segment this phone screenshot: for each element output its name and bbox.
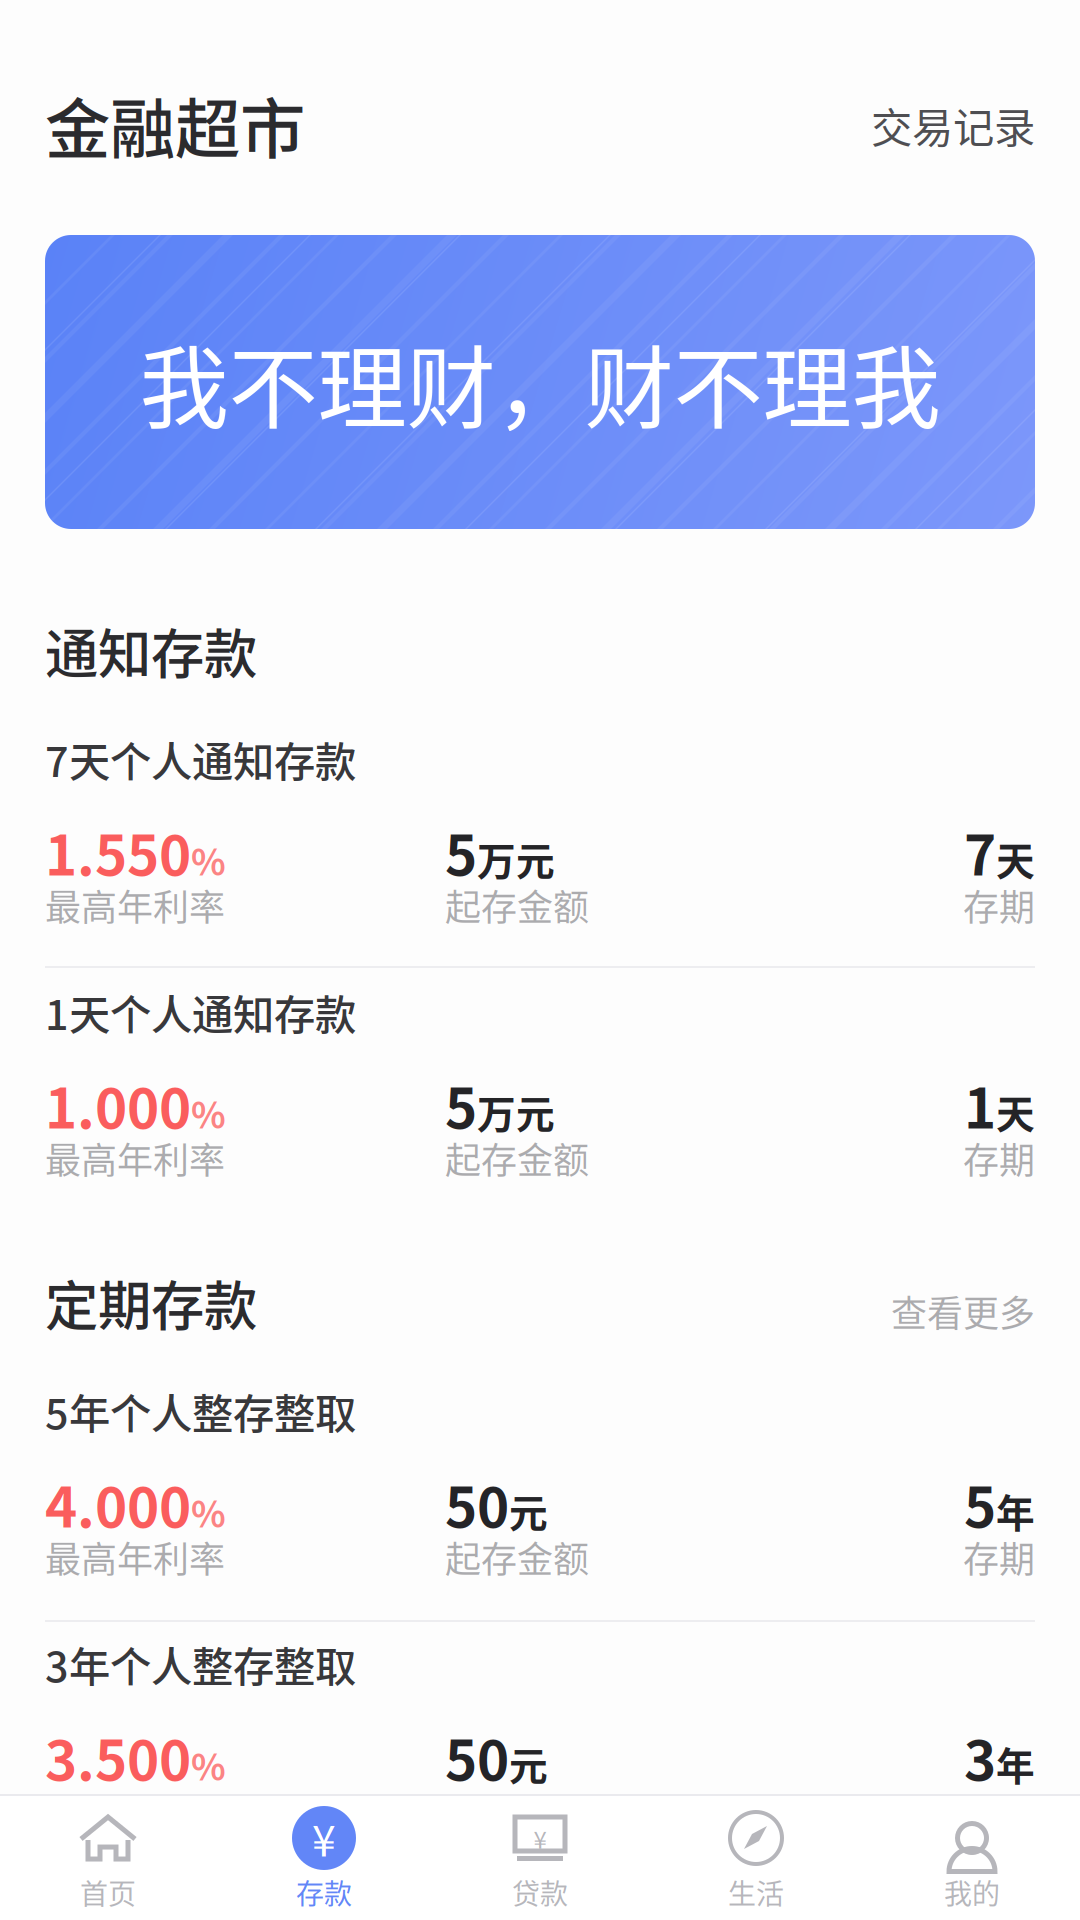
staticText: 1.550 (45, 812, 191, 891)
staticText: 查看更多 (891, 1285, 1035, 1337)
staticText: 最高年利率 (45, 879, 225, 931)
button[interactable]: ¥ (432, 1795, 648, 1920)
button[interactable]: 我不理财，财不理我 (45, 235, 1035, 529)
staticText: 万元 (477, 1084, 555, 1140)
staticText: 金融超市 (45, 77, 305, 172)
staticText: 天 (996, 1084, 1035, 1140)
staticText: 元 (509, 1736, 548, 1792)
button[interactable]: 3年个人整存整取 (45, 1634, 1035, 1826)
staticText: 7天个人通知存款 (45, 729, 356, 789)
staticText: ¥ (533, 1821, 546, 1856)
button[interactable]: 我的 (864, 1795, 1080, 1920)
staticText: 50 (445, 1464, 509, 1543)
staticText: % (191, 1486, 226, 1538)
staticText: 最高年利率 (45, 1531, 225, 1583)
staticText: 贷款 (512, 1872, 568, 1912)
staticText: 3年个人整存整取 (45, 1634, 356, 1694)
staticText: 存期 (963, 1132, 1035, 1184)
staticText: 存款 (296, 1872, 352, 1912)
staticText: 年 (996, 1736, 1035, 1792)
staticText: 起存金额 (445, 879, 589, 931)
staticText: 存期 (963, 879, 1035, 931)
button[interactable]: 1天个人通知存款 (45, 982, 1035, 1174)
staticText: 首页 (80, 1872, 136, 1912)
staticText: 1.000 (45, 1065, 191, 1144)
staticText: 最高年利率 (45, 1132, 225, 1184)
staticText: 天 (996, 831, 1035, 887)
staticText: 存期 (963, 1531, 1035, 1583)
staticText: 起存金额 (445, 1531, 589, 1583)
staticText: 起存金额 (445, 1784, 589, 1836)
staticText: 5 (964, 1464, 996, 1543)
staticText: ¥ (312, 1807, 336, 1869)
staticText: 元 (509, 1483, 548, 1539)
button[interactable]: 首页 (0, 1795, 216, 1920)
staticText: 3.500 (45, 1717, 191, 1796)
staticText: % (191, 834, 226, 886)
staticText: 存期 (963, 1784, 1035, 1836)
staticText: 交易记录 (871, 95, 1035, 155)
button[interactable]: 生活 (648, 1795, 864, 1920)
staticText: 年 (996, 1483, 1035, 1539)
staticText: 通知存款 (45, 612, 257, 689)
button[interactable]: 交易记录 (871, 77, 1035, 155)
staticText: 定期存款 (45, 1264, 257, 1341)
staticText: 1 (964, 1065, 996, 1144)
staticText: 5 (445, 1065, 477, 1144)
staticText: 万元 (477, 831, 555, 887)
button[interactable]: 5年个人整存整取 (45, 1381, 1035, 1573)
button[interactable]: 7天个人通知存款 (45, 729, 1035, 921)
staticText: % (191, 1087, 226, 1139)
staticText: 7 (964, 812, 996, 891)
button[interactable]: ¥ (216, 1795, 432, 1920)
staticText: 我的 (944, 1872, 1000, 1912)
staticText: 起存金额 (445, 1132, 589, 1184)
staticText: 3 (964, 1717, 996, 1796)
staticText: 我不理财，财不理我 (139, 317, 940, 447)
staticText: 最高年利率 (45, 1784, 225, 1836)
staticText: 4.000 (45, 1464, 191, 1543)
staticText: % (191, 1739, 226, 1791)
staticText: 50 (445, 1717, 509, 1796)
staticText: 5年个人整存整取 (45, 1381, 356, 1441)
staticText: 5 (445, 812, 477, 891)
button[interactable]: 查看更多 (891, 1264, 1035, 1337)
staticText: 1天个人通知存款 (45, 982, 356, 1042)
staticText: 生活 (728, 1872, 784, 1912)
